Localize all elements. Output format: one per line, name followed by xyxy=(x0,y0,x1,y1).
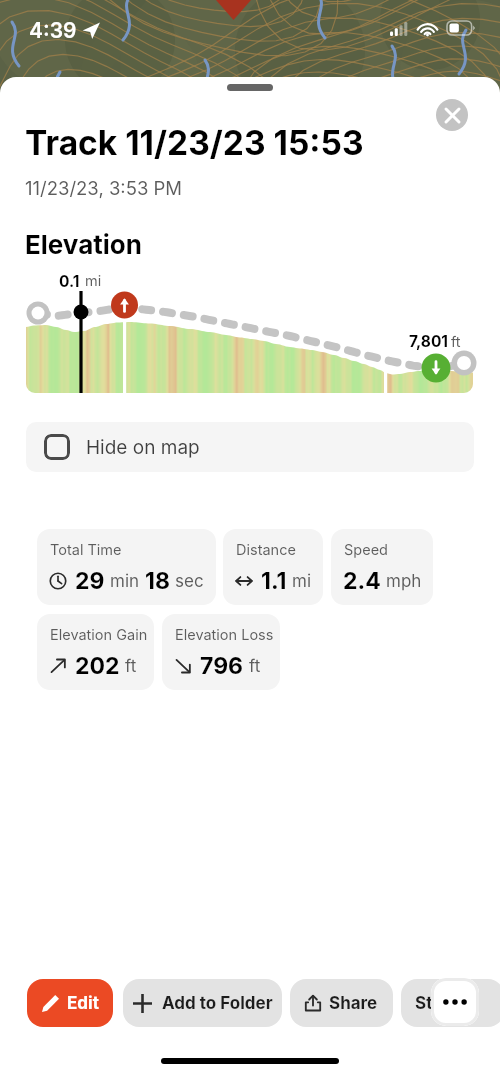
staticText: Hide on map xyxy=(86,436,200,459)
staticText: Elevation Gain xyxy=(50,626,148,644)
staticText: 1.1 xyxy=(261,567,287,595)
button[interactable]: Share xyxy=(290,979,393,1027)
staticText: mi xyxy=(85,272,102,290)
button[interactable]: Edit xyxy=(27,979,113,1027)
staticText: sec xyxy=(175,571,204,592)
button[interactable]: Elevation Loss xyxy=(162,614,280,690)
staticText: Elevation xyxy=(25,229,142,260)
staticText: 7,801 xyxy=(409,332,449,351)
staticText: ft xyxy=(125,656,137,677)
staticText: Total Time xyxy=(50,541,122,559)
button[interactable]: Elevation Gain xyxy=(37,614,154,690)
button[interactable]: Stats xyxy=(401,979,500,1027)
staticText: 18 xyxy=(145,567,170,595)
staticText: ft xyxy=(451,333,461,351)
button[interactable]: Total Time xyxy=(37,529,216,605)
button[interactable]: Close xyxy=(436,99,468,131)
staticText: 4:39 xyxy=(29,18,77,43)
staticText: Stats xyxy=(415,993,458,1014)
button[interactable]: Distance xyxy=(223,529,323,605)
staticText: mph xyxy=(386,571,422,592)
staticText: 0.1 xyxy=(59,272,80,291)
staticText: Edit xyxy=(67,993,99,1014)
staticText: Add to Folder xyxy=(162,993,273,1014)
staticText: Share xyxy=(329,993,378,1014)
staticText: min xyxy=(110,571,140,592)
button[interactable]: More options xyxy=(431,978,479,1026)
staticText: 2.4 xyxy=(343,567,381,595)
button[interactable]: Add to Folder xyxy=(123,979,282,1027)
staticText: 29 xyxy=(75,567,105,595)
staticText: Elevation Loss xyxy=(175,626,274,644)
staticText: 11/23/23, 3:53 PM xyxy=(25,177,183,199)
staticText: Track 11/23/23 15:53 xyxy=(25,123,364,164)
staticText: 796 xyxy=(200,652,244,680)
button[interactable]: Speed xyxy=(331,529,433,605)
staticText: 202 xyxy=(75,652,120,680)
staticText: Speed xyxy=(344,541,388,559)
staticText: Distance xyxy=(236,541,296,559)
staticText: mi xyxy=(292,571,312,592)
staticText: ft xyxy=(249,656,261,677)
button[interactable]: Hide on map xyxy=(26,422,474,472)
